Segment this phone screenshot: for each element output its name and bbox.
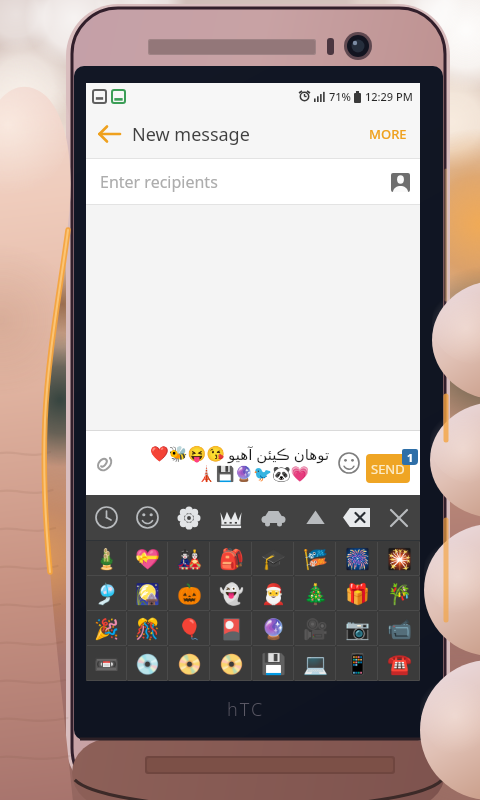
button[interactable]: del: [336, 495, 378, 540]
staticText: 🎎: [177, 547, 202, 570]
button[interactable]: tri: [294, 495, 336, 540]
button[interactable]: 📹: [378, 611, 420, 646]
staticText: New message: [132, 122, 250, 147]
staticText: 📱: [345, 652, 370, 675]
button[interactable]: Enter recipients: [86, 159, 420, 204]
staticText: 💻: [303, 652, 328, 675]
staticText: توهان ڪيئن آهيو: [228, 444, 330, 464]
staticText: 💝: [135, 547, 160, 570]
staticText: SEND: [371, 460, 405, 478]
button[interactable]: 🎋: [378, 576, 420, 611]
staticText: 📀: [219, 652, 244, 675]
button[interactable]: 🎃: [168, 576, 210, 611]
staticText: 🎅: [261, 582, 286, 605]
button[interactable]: Back: [86, 111, 132, 157]
button[interactable]: smile: [127, 495, 168, 540]
button[interactable]: 👻: [210, 576, 252, 611]
button[interactable]: 📀: [210, 646, 252, 681]
staticText: 71%: [329, 89, 351, 104]
staticText: 🎇: [387, 547, 412, 570]
button[interactable]: flower: [168, 495, 210, 540]
button[interactable]: 🎎: [168, 541, 210, 576]
staticText: Enter recipients: [100, 171, 218, 193]
button[interactable]: 💾: [252, 646, 294, 681]
button[interactable]: 🎏: [294, 541, 336, 576]
staticText: 🎊: [135, 617, 160, 640]
button[interactable]: 💿: [127, 646, 168, 681]
staticText: 📹: [387, 617, 412, 640]
staticText: 🔮: [261, 617, 286, 640]
staticText: 📷: [345, 617, 370, 640]
staticText: 🎥: [303, 617, 328, 640]
staticText: 🎓: [261, 547, 286, 570]
button[interactable]: ☎️: [378, 646, 420, 681]
button[interactable]: 💻: [294, 646, 336, 681]
staticText: 12:29 PM: [365, 89, 413, 104]
button[interactable]: 📀: [168, 646, 210, 681]
staticText: 🎉: [94, 617, 119, 640]
button[interactable]: 🎈: [168, 611, 210, 646]
staticText: MORE: [369, 125, 407, 143]
staticText: 1: [407, 450, 414, 465]
staticText: ☎️: [387, 652, 412, 675]
button[interactable]: 🎆: [336, 541, 378, 576]
button[interactable]: x: [378, 495, 420, 540]
button[interactable]: Attach file: [86, 446, 120, 480]
staticText: 🎃: [177, 582, 202, 605]
button[interactable]: 🎐: [86, 576, 127, 611]
button[interactable]: car: [252, 495, 294, 540]
staticText: 📀: [177, 652, 202, 675]
button[interactable]: 🎓: [252, 541, 294, 576]
button[interactable]: SEND: [366, 454, 410, 483]
button[interactable]: crown: [210, 495, 252, 540]
staticText: 🎐: [94, 582, 119, 605]
button[interactable]: 🔮: [252, 611, 294, 646]
button[interactable]: Emoji: [332, 446, 366, 480]
staticText: 📼: [94, 652, 119, 675]
staticText: 💾: [261, 652, 286, 675]
button[interactable]: 🎄: [294, 576, 336, 611]
staticText: 🎍: [94, 547, 119, 570]
staticText: 💿: [135, 652, 160, 675]
staticText: 🎋: [387, 582, 412, 605]
staticText: 🗼💾🔮🐦🐼💗: [197, 465, 310, 483]
staticText: 🎏: [303, 547, 328, 570]
staticText: 👻: [219, 582, 244, 605]
button[interactable]: 💝: [127, 541, 168, 576]
staticText: 🎈: [177, 617, 202, 640]
button[interactable]: 🎉: [86, 611, 127, 646]
button[interactable]: 🎒: [210, 541, 252, 576]
staticText: ❤️🐝😝😘: [150, 445, 225, 463]
staticText: 🎁: [345, 582, 370, 605]
button[interactable]: 🎍: [86, 541, 127, 576]
button[interactable]: 📼: [86, 646, 127, 681]
staticText: 🎴: [219, 617, 244, 640]
button[interactable]: 🎁: [336, 576, 378, 611]
staticText: 🎆: [345, 547, 370, 570]
button[interactable]: 🎇: [378, 541, 420, 576]
staticText: 🎑: [135, 582, 160, 605]
button[interactable]: 🎥: [294, 611, 336, 646]
staticText: 🎒: [219, 547, 244, 570]
button[interactable]: Add recipient: [380, 162, 420, 202]
button[interactable]: clock: [86, 495, 127, 540]
button[interactable]: 🎴: [210, 611, 252, 646]
button[interactable]: MORE: [356, 110, 420, 158]
staticText: hTC: [227, 697, 265, 722]
button[interactable]: 🎑: [127, 576, 168, 611]
button[interactable]: 🎊: [127, 611, 168, 646]
staticText: 🎄: [303, 582, 328, 605]
button[interactable]: 📱: [336, 646, 378, 681]
button[interactable]: 🎅: [252, 576, 294, 611]
button[interactable]: 📷: [336, 611, 378, 646]
